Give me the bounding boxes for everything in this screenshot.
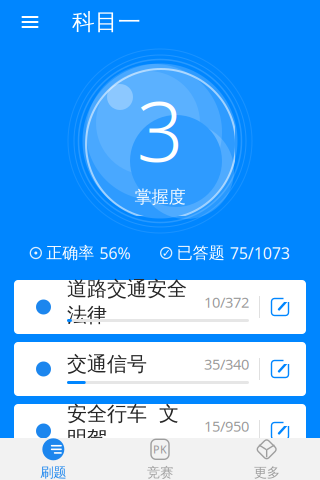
staticText: 3	[136, 74, 183, 184]
button[interactable]: 道路交通安全法律...	[14, 280, 306, 334]
button[interactable]: 更多	[213, 438, 320, 480]
staticText: 35/340	[204, 354, 249, 374]
staticText: ✓	[162, 247, 171, 259]
staticText: 道路交通安全法律...	[67, 276, 187, 327]
staticText: 竞赛	[147, 464, 173, 480]
staticText: 刷题	[40, 464, 66, 480]
button[interactable]: 刷题	[0, 438, 107, 480]
button[interactable]: PK	[107, 438, 213, 480]
staticText: 10/372	[204, 292, 249, 312]
staticText: 科目一	[72, 8, 141, 36]
staticText: 安全行车 文明驾	[67, 401, 179, 450]
staticText: PK	[153, 442, 167, 456]
staticText: 交通信号	[67, 352, 147, 376]
staticText: 掌握度	[134, 186, 185, 207]
staticText: 56%	[99, 242, 130, 264]
staticText: 更多	[254, 464, 280, 480]
staticText: 正确率	[46, 243, 94, 263]
staticText: 75/1073	[230, 242, 290, 264]
staticText: 15/950	[204, 416, 249, 436]
button[interactable]: 安全行车 文明驾	[14, 404, 306, 458]
staticText: 已答题	[177, 243, 225, 263]
button[interactable]: 菜单	[14, 7, 46, 37]
button[interactable]: 交通信号	[14, 342, 306, 396]
